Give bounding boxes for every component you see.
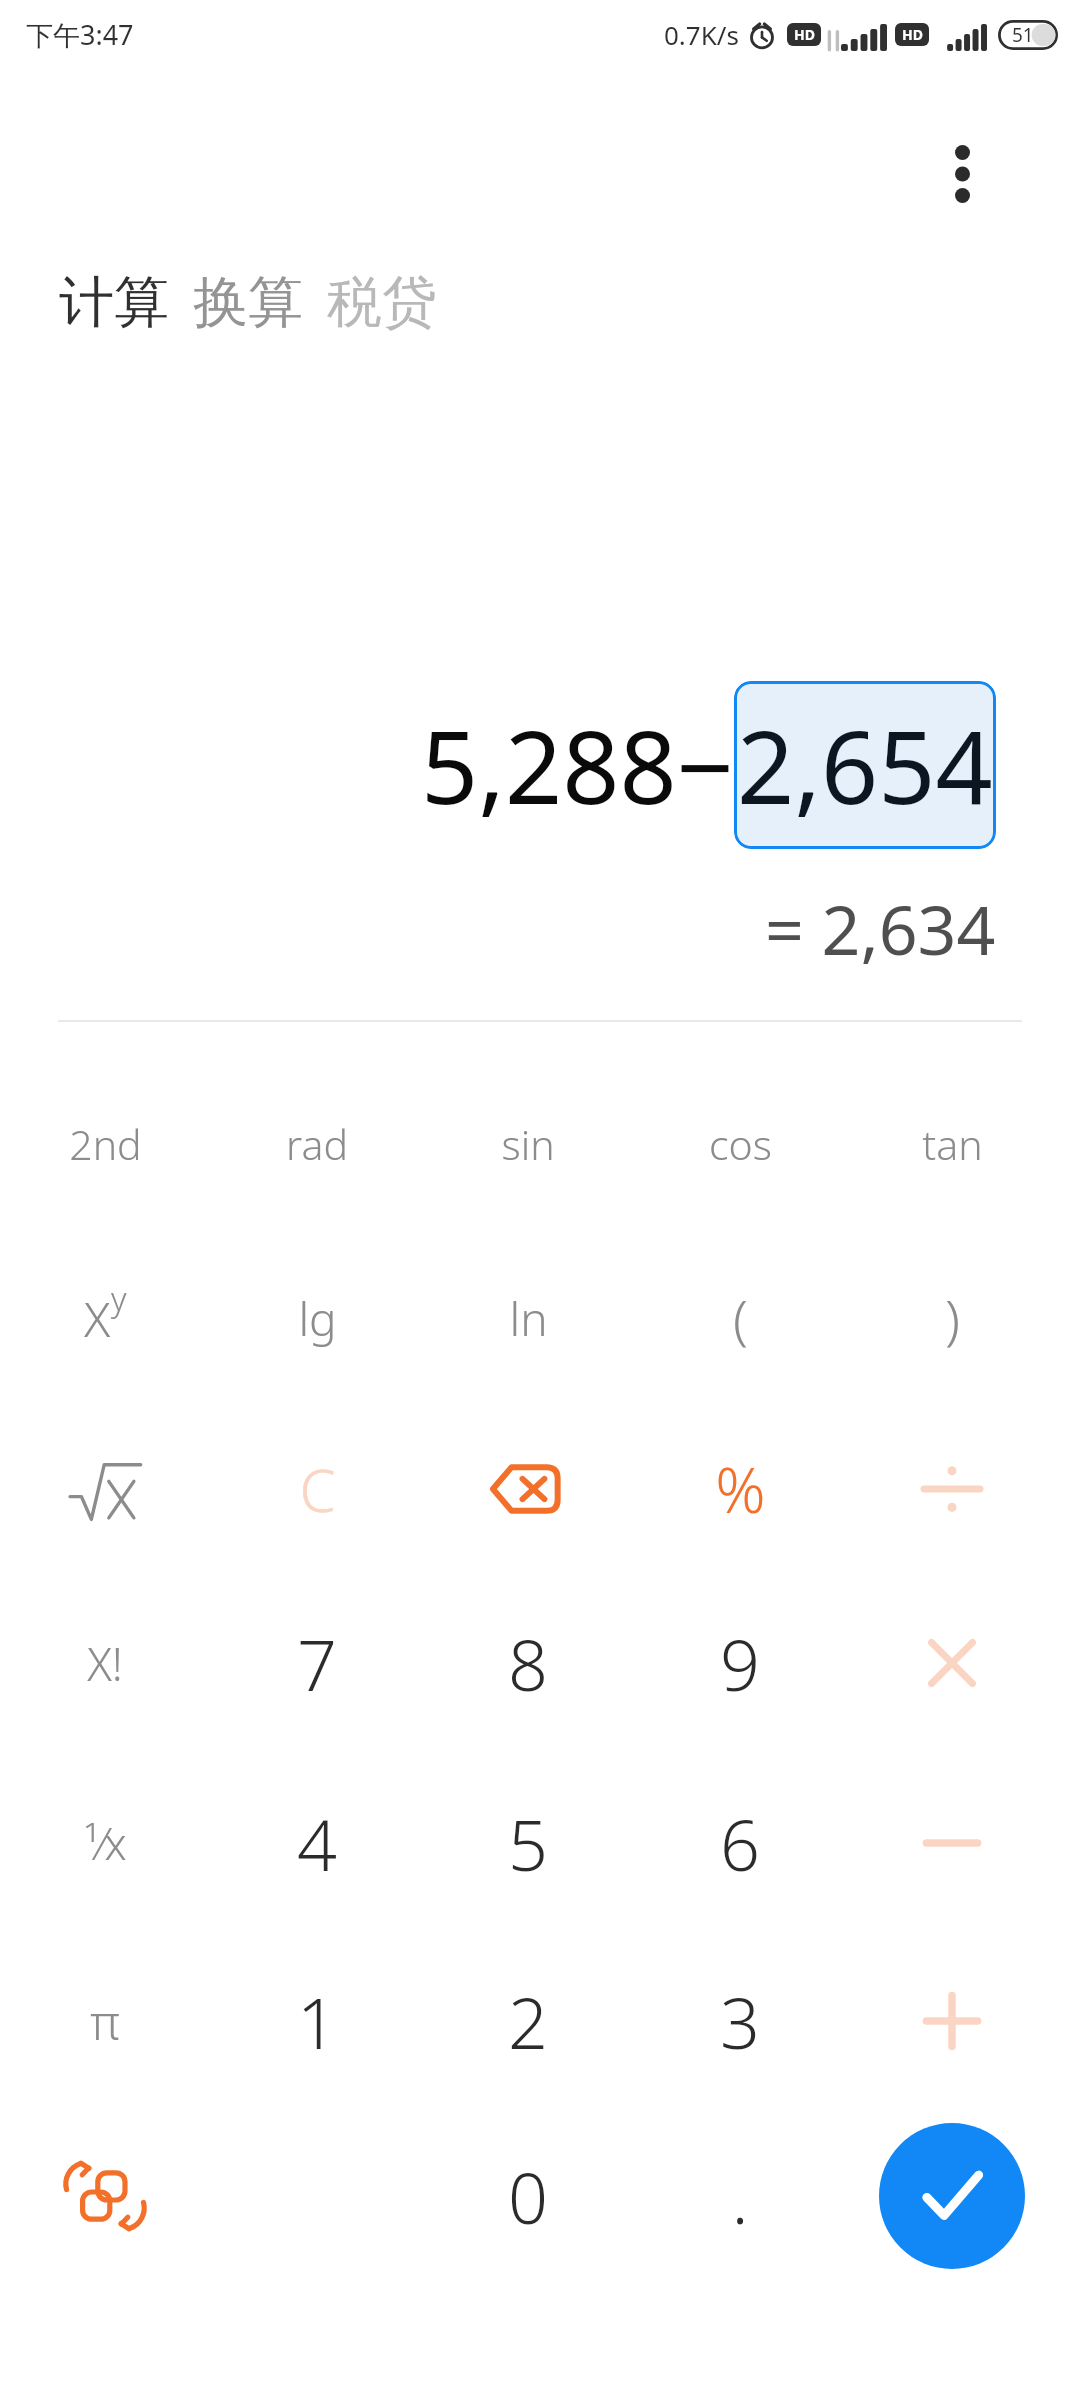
staticText: 0 xyxy=(508,2149,548,2244)
staticText: 5,288− xyxy=(421,697,734,833)
button[interactable]: 7 xyxy=(217,1583,417,1743)
button[interactable]: 1 xyxy=(217,1941,417,2101)
button[interactable]: Equals xyxy=(879,2123,1025,2269)
staticText: 9 xyxy=(720,1616,760,1711)
staticText: 3 xyxy=(720,1974,760,2069)
staticText: y xyxy=(111,1276,127,1321)
staticText: HD xyxy=(794,25,815,44)
button[interactable]: 2,654 xyxy=(734,681,996,849)
button[interactable]: Unit conversion xyxy=(5,2116,205,2276)
button[interactable]: π xyxy=(5,1941,205,2101)
staticText: = 2,634 xyxy=(765,882,996,975)
button[interactable]: rad xyxy=(217,1064,417,1224)
staticText: % xyxy=(715,1447,766,1531)
staticText: 2 xyxy=(508,1974,548,2069)
button[interactable]: 9 xyxy=(640,1583,840,1743)
button[interactable]: Square root xyxy=(5,1409,205,1569)
button[interactable]: cos xyxy=(640,1064,840,1224)
button[interactable]: 4 xyxy=(217,1763,417,1923)
staticText: lg xyxy=(298,1287,337,1350)
staticText: . xyxy=(731,2149,749,2244)
staticText: 换算 xyxy=(193,268,303,337)
staticText: ( xyxy=(733,1281,748,1355)
button[interactable]: X! xyxy=(5,1583,205,1743)
button[interactable]: ) xyxy=(852,1238,1052,1398)
button[interactable]: Divide xyxy=(852,1409,1052,1569)
button[interactable]: 计算 xyxy=(56,262,172,343)
staticText: C xyxy=(299,1450,336,1529)
button[interactable]: Backspace xyxy=(428,1409,628,1569)
staticText: ) xyxy=(945,1281,960,1355)
staticText: HD xyxy=(902,25,923,44)
staticText: 1 xyxy=(297,1974,337,2069)
staticText: 4 xyxy=(297,1796,337,1891)
button[interactable]: 2nd xyxy=(5,1064,205,1224)
button[interactable]: . xyxy=(640,2116,840,2276)
staticText: rad xyxy=(286,1116,348,1172)
staticText: ¹⁄x xyxy=(84,1813,127,1873)
staticText: π xyxy=(90,1989,120,2054)
button[interactable]: 5 xyxy=(428,1763,628,1923)
button[interactable]: 6 xyxy=(640,1763,840,1923)
staticText: X xyxy=(84,1286,111,1351)
staticText: 6 xyxy=(720,1796,760,1891)
button[interactable]: % xyxy=(640,1409,840,1569)
button[interactable]: More options xyxy=(918,130,1006,218)
button[interactable]: 0 xyxy=(428,2116,628,2276)
button[interactable]: lg xyxy=(217,1238,417,1398)
staticText: 税贷 xyxy=(327,268,437,337)
button[interactable]: ¹⁄x xyxy=(5,1763,205,1923)
staticText: X! xyxy=(87,1633,123,1694)
button[interactable]: 税贷 xyxy=(324,262,440,343)
staticText: 7 xyxy=(297,1616,337,1711)
staticText: sin xyxy=(501,1116,555,1172)
staticText: 5 xyxy=(508,1796,548,1891)
button[interactable]: sin xyxy=(428,1064,628,1224)
staticText: 51 xyxy=(1012,22,1034,48)
staticText: 0.7K/s xyxy=(664,17,739,52)
button[interactable]: ( xyxy=(640,1238,840,1398)
staticText: 计算 xyxy=(59,268,169,337)
button[interactable]: Plus xyxy=(852,1941,1052,2101)
button[interactable]: tan xyxy=(852,1064,1052,1224)
staticText: tan xyxy=(922,1116,983,1172)
staticText: cos xyxy=(709,1116,772,1172)
staticText: 8 xyxy=(508,1616,548,1711)
staticText: 下午3:47 xyxy=(26,16,134,53)
button[interactable]: 8 xyxy=(428,1583,628,1743)
button[interactable]: X xyxy=(5,1238,205,1398)
button[interactable]: C xyxy=(217,1409,417,1569)
button[interactable]: ln xyxy=(428,1238,628,1398)
staticText: 2nd xyxy=(69,1116,142,1172)
button[interactable]: Multiply xyxy=(852,1583,1052,1743)
button[interactable]: 2 xyxy=(428,1941,628,2101)
button[interactable]: 换算 xyxy=(190,262,306,343)
button[interactable]: Minus xyxy=(852,1763,1052,1923)
staticText: 2,654 xyxy=(737,697,993,833)
staticText: ln xyxy=(509,1287,548,1350)
button[interactable]: 3 xyxy=(640,1941,840,2101)
